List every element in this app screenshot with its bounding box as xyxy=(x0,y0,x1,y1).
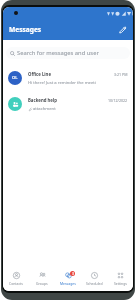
button[interactable]: Search for messages and user xyxy=(6,47,130,59)
staticText: Settings xyxy=(114,281,127,286)
staticText: Contacts xyxy=(9,281,23,286)
button[interactable]: OL xyxy=(3,65,133,91)
button[interactable]: Groups xyxy=(29,267,55,291)
button[interactable]: Compose new message xyxy=(116,23,129,36)
button[interactable]: 3 xyxy=(55,267,81,291)
staticText: 10/12/2022 xyxy=(108,98,128,103)
staticText: Hi there! Just a reminder the meeti xyxy=(28,80,96,86)
staticText: 3 xyxy=(72,271,74,276)
staticText: Groups xyxy=(36,281,48,286)
staticText: attachment xyxy=(33,106,56,112)
staticText: Backend help xyxy=(28,97,57,103)
button[interactable]: Backend help xyxy=(3,91,133,117)
button[interactable]: Settings xyxy=(107,267,133,291)
staticText: Office Line xyxy=(28,71,51,77)
button[interactable]: Scheduled xyxy=(81,267,107,291)
staticText: 3:21 PM xyxy=(114,72,128,77)
staticText: Scheduled xyxy=(86,281,103,286)
staticText: Messages xyxy=(60,281,76,286)
button[interactable]: Contacts xyxy=(3,267,29,291)
staticText: Search for messages and user xyxy=(17,49,99,57)
staticText: Messages xyxy=(9,25,42,34)
staticText: OL xyxy=(12,75,18,81)
